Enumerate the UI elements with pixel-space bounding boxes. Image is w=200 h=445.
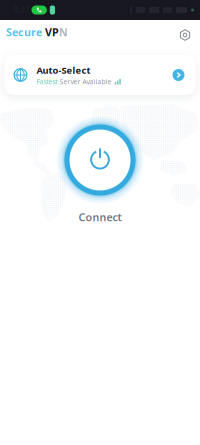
staticText: Auto-Select — [36, 64, 90, 76]
staticText: Fastest — [36, 77, 59, 86]
staticText: N — [59, 25, 68, 39]
button[interactable]: Settings — [173, 20, 197, 44]
staticText: 9:41 — [13, 5, 30, 15]
staticText: Connect — [78, 210, 121, 224]
staticText: Server Available — [59, 77, 111, 86]
staticText: Secure — [6, 25, 45, 39]
staticText: VP — [45, 25, 59, 39]
button[interactable]: Auto-Select — [4, 55, 195, 95]
button[interactable]: Connect — [55, 115, 145, 205]
